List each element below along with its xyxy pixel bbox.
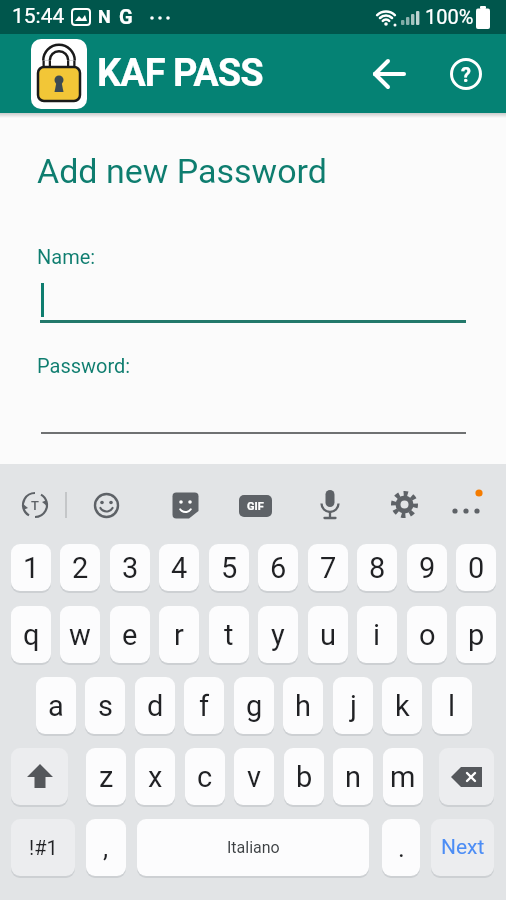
button[interactable]: p <box>456 606 496 663</box>
button[interactable]: 0 <box>456 544 496 591</box>
staticText: 1 <box>23 551 40 585</box>
button[interactable]: 8 <box>357 544 397 591</box>
button[interactable]: 5 <box>209 544 249 591</box>
button[interactable]: f <box>184 677 224 734</box>
button[interactable]: GIF <box>239 495 272 517</box>
staticText: d <box>147 689 164 723</box>
staticText: Name: <box>37 245 96 268</box>
button[interactable]: a <box>36 677 76 734</box>
button[interactable]: 9 <box>407 544 447 591</box>
button[interactable]: j <box>333 677 373 734</box>
staticText: h <box>295 689 311 723</box>
button[interactable]: n <box>333 748 373 805</box>
staticText: ? <box>461 63 471 86</box>
staticText: 3 <box>122 551 139 585</box>
button[interactable]: 1 <box>11 544 51 591</box>
button[interactable] <box>40 384 466 434</box>
staticText: s <box>98 689 113 723</box>
staticText: v <box>247 760 262 794</box>
staticText: p <box>468 618 485 652</box>
staticText: c <box>197 760 213 794</box>
button[interactable]: 4 <box>159 544 199 591</box>
button[interactable]: g <box>234 677 274 734</box>
button[interactable]: t <box>209 606 249 663</box>
button[interactable]: q <box>11 606 51 663</box>
button[interactable]: z <box>86 748 126 805</box>
button[interactable]: h <box>283 677 323 734</box>
staticText: m <box>390 760 416 794</box>
button[interactable]: m <box>383 748 423 805</box>
staticText: 0 <box>468 551 485 585</box>
button[interactable]: y <box>258 606 298 663</box>
staticText: r <box>174 618 184 652</box>
button[interactable] <box>439 748 494 805</box>
button[interactable]: o <box>407 606 447 663</box>
staticText: z <box>99 760 114 794</box>
staticText: 100% <box>425 5 474 28</box>
button[interactable]: e <box>110 606 150 663</box>
staticText: N <box>98 6 111 27</box>
button[interactable]: 3 <box>110 544 150 591</box>
button[interactable]: 2 <box>60 544 100 591</box>
button[interactable]: Next <box>431 819 494 876</box>
staticText: t <box>224 618 234 652</box>
staticText: y <box>271 618 285 652</box>
button[interactable]: b <box>284 748 324 805</box>
button[interactable]: 7 <box>308 544 348 591</box>
button[interactable]: k <box>382 677 422 734</box>
button[interactable]: Italiano <box>137 819 369 876</box>
button[interactable] <box>93 492 120 519</box>
staticText: q <box>23 618 40 652</box>
staticText: Password: <box>37 354 131 377</box>
button[interactable]: v <box>234 748 274 805</box>
button[interactable] <box>40 273 466 323</box>
button[interactable] <box>391 491 418 518</box>
staticText: g <box>246 689 263 723</box>
button[interactable]: , <box>86 819 126 876</box>
staticText: Next <box>441 835 485 860</box>
staticText: 2 <box>72 551 89 585</box>
staticText: , <box>103 833 109 863</box>
button[interactable]: d <box>135 677 175 734</box>
staticText: G <box>119 5 133 28</box>
staticText: 4 <box>171 551 188 585</box>
staticText: 9 <box>419 551 436 585</box>
button[interactable]: ? <box>448 56 484 92</box>
button[interactable]: c <box>185 748 225 805</box>
staticText: 15:44 <box>12 4 65 29</box>
staticText: Add new Password <box>37 151 327 191</box>
button[interactable]: !#1 <box>11 819 75 876</box>
button[interactable]: l <box>432 677 472 734</box>
staticText: w <box>69 618 91 652</box>
staticText: KAF PASS <box>97 51 263 96</box>
staticText: i <box>373 618 381 652</box>
staticText: a <box>48 689 64 723</box>
staticText: b <box>296 760 313 794</box>
staticText: . <box>398 833 405 863</box>
button[interactable]: . <box>382 819 420 876</box>
button[interactable]: u <box>308 606 348 663</box>
staticText: k <box>395 689 410 723</box>
button[interactable] <box>366 58 412 90</box>
staticText: e <box>122 618 138 652</box>
staticText: f <box>199 689 210 723</box>
staticText: !#1 <box>29 836 58 859</box>
staticText: u <box>320 618 336 652</box>
staticText: l <box>448 689 456 723</box>
button[interactable]: i <box>357 606 397 663</box>
button[interactable]: r <box>159 606 199 663</box>
button[interactable] <box>318 490 342 521</box>
button[interactable]: x <box>135 748 175 805</box>
button[interactable]: s <box>85 677 125 734</box>
button[interactable]: w <box>60 606 100 663</box>
button[interactable] <box>450 486 486 520</box>
button[interactable] <box>11 748 68 805</box>
staticText: o <box>419 618 436 652</box>
staticText: 7 <box>320 551 337 585</box>
button[interactable]: 6 <box>258 544 298 591</box>
staticText: j <box>350 689 357 723</box>
staticText: Italiano <box>227 838 280 857</box>
staticText: 6 <box>270 551 287 585</box>
button[interactable]: T <box>20 490 50 520</box>
button[interactable] <box>172 492 199 519</box>
